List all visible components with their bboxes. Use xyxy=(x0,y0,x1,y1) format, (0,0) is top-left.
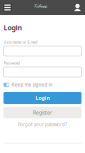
button[interactable]: Account xyxy=(70,0,85,15)
staticText: Password xyxy=(3,60,19,66)
staticText: Username or E-mail xyxy=(3,39,37,45)
staticText: Keep me signed in xyxy=(12,82,53,88)
staticText: Forgot your password? xyxy=(18,122,67,128)
staticText: Login xyxy=(35,94,49,101)
button[interactable]: Register xyxy=(3,107,81,118)
staticText: Register xyxy=(33,109,52,116)
button[interactable]: Menu xyxy=(0,0,15,15)
staticText: Login xyxy=(3,23,22,32)
button[interactable]: Keep me signed in xyxy=(3,82,81,88)
staticText: Kahuna xyxy=(34,3,47,9)
button[interactable]: Login xyxy=(3,92,81,104)
button[interactable]: Forgot your password? xyxy=(3,122,81,128)
